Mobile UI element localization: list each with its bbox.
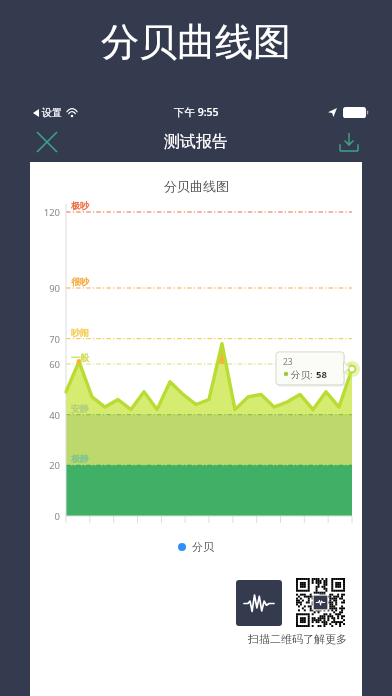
staticText: 吵闹 [71,327,89,338]
staticText: 设置 [42,106,62,119]
button[interactable]: 下载报告 [332,125,366,159]
staticText: 0 [54,510,60,523]
staticText: 扫描二维码了解更多 [248,632,347,646]
button[interactable]: 关闭 [30,125,64,159]
staticText: 20 [49,459,60,472]
staticText: 安静 [71,403,89,414]
staticText: 23 [283,356,293,368]
staticText: 极吵 [71,200,89,211]
staticText: 下午 9:55 [174,105,219,119]
staticText: 分贝曲线图 [164,178,229,194]
staticText: 分贝曲线图 [101,18,291,66]
staticText: 90 [49,282,60,295]
staticText: 60 [49,358,60,371]
staticText: 一般 [71,352,89,363]
staticText: 70 [49,333,60,346]
staticText: 分贝 [192,540,214,554]
staticText: 40 [49,409,60,422]
button[interactable]: 分贝 [178,540,214,554]
staticText: 58 [316,368,327,381]
staticText: 120 [43,206,60,219]
staticText: 很吵 [71,276,89,287]
staticText: 测试报告 [164,132,228,152]
staticText: 极静 [71,453,89,464]
staticText: 分贝: [291,368,316,381]
